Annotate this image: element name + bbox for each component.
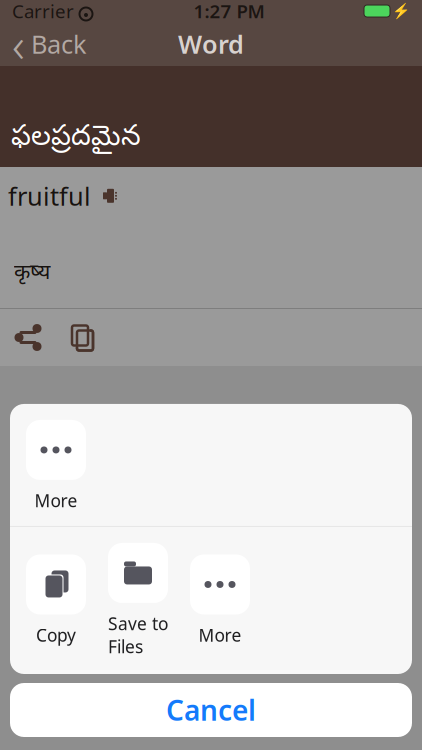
button[interactable]: More	[181, 554, 259, 646]
staticText: Word	[178, 27, 244, 61]
staticText: More	[198, 623, 241, 646]
button[interactable]: Copy	[68, 311, 96, 363]
staticText: ⚡	[392, 3, 410, 19]
button[interactable]: Share	[14, 311, 42, 363]
staticText: ‹	[12, 12, 25, 76]
staticText: Back	[31, 27, 87, 61]
staticText: ఫలప్రదమైన	[11, 121, 141, 158]
staticText: Save to Files	[108, 612, 168, 658]
staticText: कृष्य	[14, 257, 50, 285]
staticText: 1:27 PM	[193, 0, 264, 23]
button[interactable]: More	[17, 420, 95, 512]
button[interactable]: Copy	[17, 554, 95, 646]
staticText: fruitful	[8, 179, 91, 213]
staticText: Carrier	[12, 0, 74, 23]
button[interactable]: ‹	[0, 22, 97, 66]
button[interactable]: Cancel	[10, 683, 412, 737]
button[interactable]: Pronounce	[99, 188, 121, 204]
staticText: More	[34, 489, 77, 512]
staticText: Copy	[36, 623, 76, 646]
staticText: Cancel	[166, 691, 256, 729]
button[interactable]: Save to Files	[99, 543, 177, 658]
